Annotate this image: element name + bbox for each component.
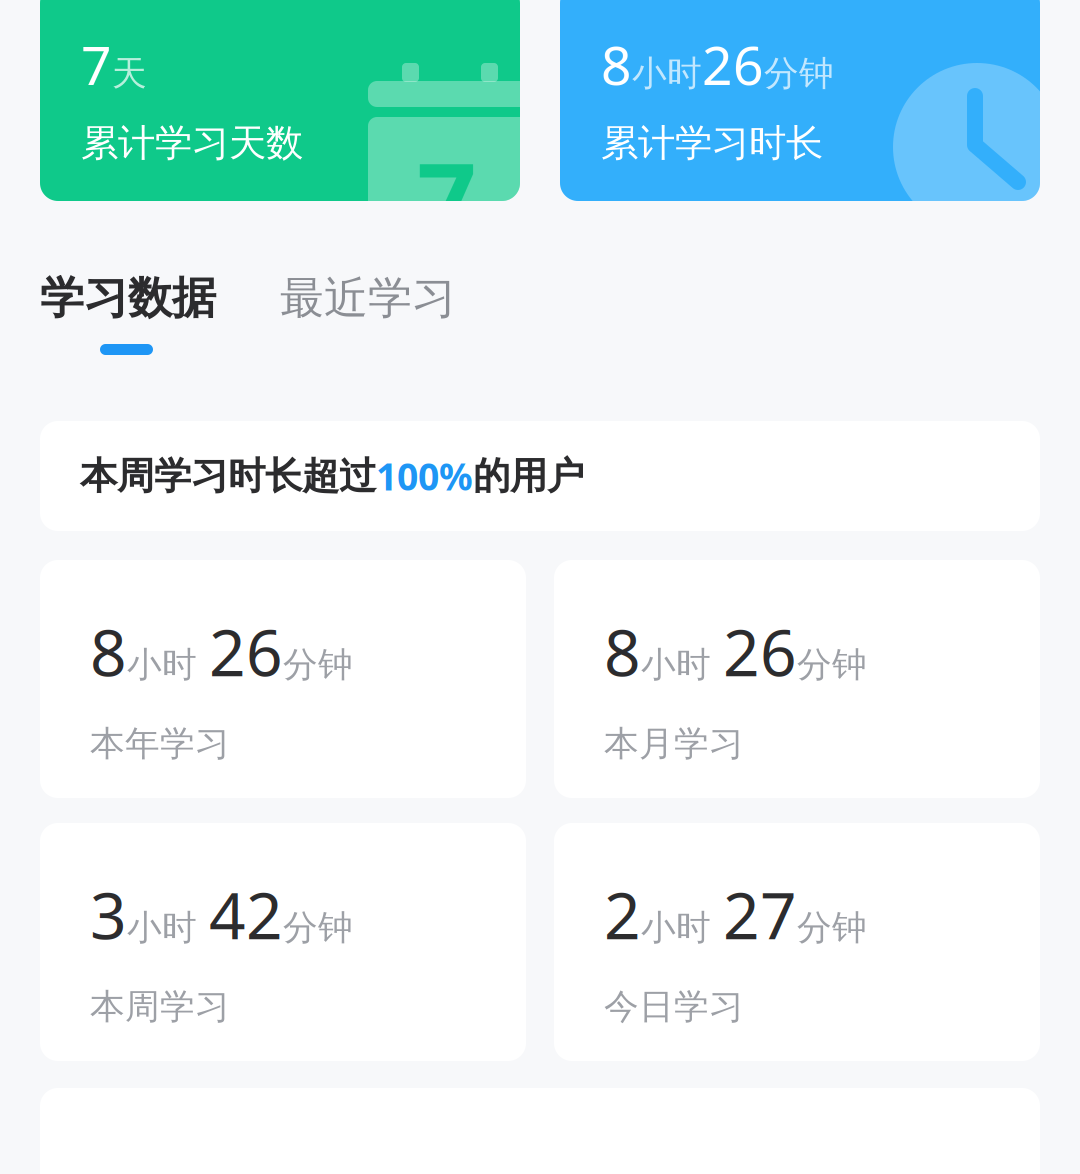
staticText: 分钟 (283, 906, 353, 949)
staticText: 7 (417, 129, 476, 267)
button[interactable]: 学习数据 (40, 272, 240, 382)
staticText: 学习数据 (40, 271, 216, 325)
staticText: 小时 (127, 906, 197, 949)
button[interactable]: 7 (40, 0, 520, 201)
staticText: 本年学习 (90, 722, 230, 765)
staticText: 26 (209, 609, 283, 694)
staticText: 的用户 (473, 453, 584, 499)
staticText: 26 (723, 609, 797, 694)
staticText: 7 (81, 29, 112, 100)
staticText: 8 (90, 609, 127, 694)
staticText: 8 (604, 609, 641, 694)
staticText: 本周学习时长超过 (80, 453, 376, 499)
staticText: 小时 (127, 643, 197, 686)
staticText: 累计学习天数 (81, 120, 303, 166)
staticText: 26 (702, 29, 764, 100)
button[interactable]: 本周学习时长超过 (40, 421, 1040, 531)
staticText: 小时 (641, 906, 711, 949)
staticText: 小时 (632, 52, 702, 95)
staticText: 分钟 (764, 52, 834, 95)
staticText: 2 (604, 872, 641, 957)
staticText: 今日学习 (604, 985, 744, 1028)
button[interactable]: 8 (554, 560, 1040, 798)
staticText: 天 (112, 52, 147, 95)
staticText: 8 (601, 29, 632, 100)
staticText: 100% (376, 451, 473, 501)
button[interactable]: 最近学习 (280, 272, 480, 324)
button[interactable]: 8 (560, 0, 1040, 201)
staticText: 最近学习 (280, 271, 456, 325)
staticText: 分钟 (797, 643, 867, 686)
staticText: 本月学习 (604, 722, 744, 765)
button[interactable]: 2 (554, 823, 1040, 1061)
staticText: 3 (90, 872, 127, 957)
staticText: 小时 (641, 643, 711, 686)
button[interactable]: 8 (40, 560, 526, 798)
staticText: 分钟 (797, 906, 867, 949)
button[interactable]: 3 (40, 823, 526, 1061)
staticText: 累计学习时长 (601, 120, 823, 166)
staticText: 27 (723, 872, 797, 957)
staticText: 分钟 (283, 643, 353, 686)
staticText: 42 (209, 872, 283, 957)
staticText: 本周学习 (90, 985, 230, 1028)
